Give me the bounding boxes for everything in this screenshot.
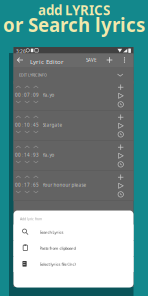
button[interactable]: 00 (13, 81, 133, 111)
staticText: Stargate (42, 122, 62, 128)
staticText: 07 (24, 92, 30, 98)
button[interactable]: Search Lyrics (13, 224, 133, 240)
staticText: : (21, 122, 24, 128)
staticText: 09 (33, 92, 39, 98)
staticText: 3:26 (16, 48, 26, 55)
button[interactable]: 00 (13, 141, 133, 171)
button[interactable]: 00 (13, 171, 133, 201)
button[interactable]: Paste from clipboard (13, 240, 133, 256)
staticText: 65 (33, 182, 39, 188)
staticText: Search Lyrics (39, 229, 63, 235)
staticText: Add lyric from (20, 216, 42, 221)
button[interactable]: Back (14, 53, 25, 66)
staticText: : (30, 182, 33, 188)
staticText: 14 (24, 152, 30, 158)
button[interactable]: SAVE (84, 53, 98, 66)
staticText: : (21, 152, 24, 158)
staticText: 00 (15, 122, 21, 128)
staticText: 45 (33, 122, 39, 128)
staticText: Ya, yo (42, 152, 54, 158)
staticText: : (30, 152, 33, 158)
button[interactable]: More options (120, 53, 129, 66)
staticText: 00 (15, 92, 21, 98)
staticText: : (30, 122, 33, 128)
staticText: 17 (24, 182, 30, 188)
staticText: Paste from clipboard (39, 245, 75, 251)
button[interactable]: Select lyrics file (.lrc) (13, 256, 133, 272)
staticText: 00 (15, 182, 21, 188)
staticText: 00 (15, 152, 21, 158)
button[interactable]: EDIT LYRIC INFO (13, 67, 133, 84)
staticText: 93 (33, 152, 39, 158)
staticText: Your honour please (42, 182, 86, 188)
staticText: Select lyrics file (.lrc) (39, 261, 75, 267)
staticText: : (21, 92, 24, 98)
staticText: 10 (24, 122, 30, 128)
staticText: Lyric Editor (30, 57, 64, 66)
button[interactable]: 00 (13, 111, 133, 141)
staticText: SAVE (86, 57, 97, 63)
staticText: or Search lyrics (3, 12, 145, 37)
staticText: add LYRICS (38, 1, 110, 19)
staticText: : (21, 182, 24, 188)
staticText: : (30, 92, 33, 98)
staticText: Ya, yo (42, 92, 54, 98)
button[interactable]: Add (104, 53, 115, 66)
staticText: EDIT LYRIC INFO (19, 72, 47, 78)
